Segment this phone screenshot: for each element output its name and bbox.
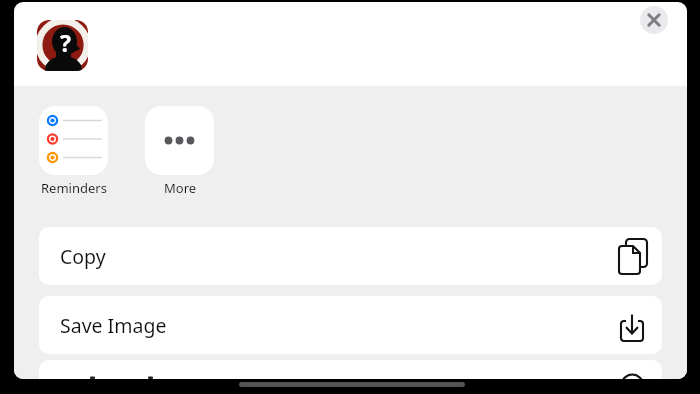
button[interactable] [39, 360, 662, 379]
button[interactable] [640, 6, 668, 34]
staticText: Copy [60, 243, 106, 270]
staticText: Reminders [41, 179, 107, 196]
button[interactable]: Copy [39, 227, 662, 285]
staticText: Save Image [60, 312, 167, 339]
staticText: More [164, 179, 197, 196]
button[interactable] [39, 106, 108, 175]
button[interactable] [145, 106, 214, 175]
staticText: ? [60, 27, 71, 58]
button[interactable]: Save Image [39, 296, 662, 354]
